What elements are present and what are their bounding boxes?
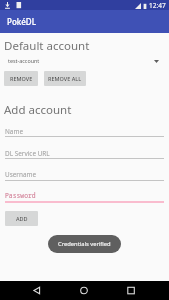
button[interactable]: test-account <box>0 53 169 67</box>
staticText: REMOVE ALL <box>48 75 82 82</box>
button[interactable]: Back <box>23 281 51 300</box>
staticText: Username <box>5 170 37 179</box>
staticText: Default account <box>4 38 90 54</box>
staticText: test-account <box>8 57 40 64</box>
staticText: Password <box>5 191 36 200</box>
staticText: DL Service URL <box>5 149 50 158</box>
button[interactable]: ADD <box>5 211 38 226</box>
button[interactable]: REMOVE ALL <box>44 71 86 86</box>
staticText: 12:47 <box>149 1 166 10</box>
staticText: REMOVE <box>10 75 33 82</box>
button[interactable]: Recents <box>117 281 145 300</box>
button[interactable]: REMOVE <box>4 71 38 86</box>
staticText: Add account <box>4 102 72 118</box>
staticText: ADD <box>16 215 28 222</box>
button[interactable]: Home <box>70 281 98 300</box>
staticText: PokéDL <box>7 16 36 27</box>
staticText: Name <box>5 127 24 136</box>
staticText: Credentials verified <box>58 240 111 248</box>
